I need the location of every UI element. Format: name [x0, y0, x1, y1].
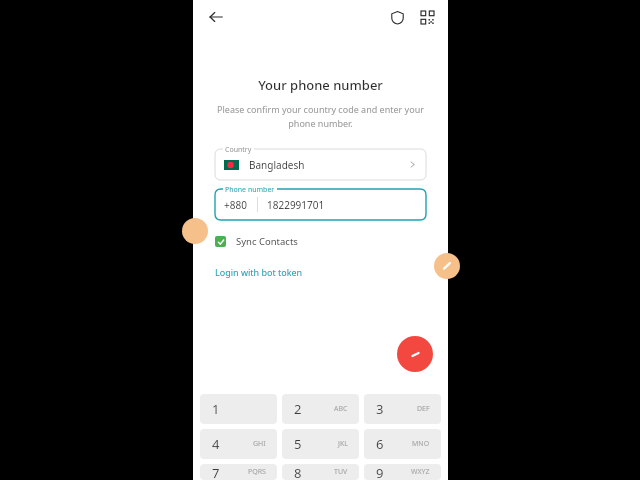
- staticText: Bangladesh: [249, 158, 305, 172]
- button[interactable]: Sync Contacts: [215, 233, 298, 250]
- button[interactable]: Proxy settings: [384, 4, 410, 30]
- staticText: Phone number: [225, 185, 275, 195]
- button[interactable]: 7: [200, 464, 277, 480]
- button[interactable]: Scan QR code: [414, 4, 440, 30]
- button[interactable]: Country: [193, 149, 448, 180]
- staticText: 8: [294, 464, 302, 480]
- button[interactable]: 5: [282, 429, 359, 459]
- staticText: 1822991701: [267, 198, 325, 212]
- button[interactable]: Next: [397, 336, 433, 372]
- staticText: JKL: [338, 439, 348, 449]
- staticText: 2: [294, 400, 302, 418]
- staticText: DEF: [417, 404, 430, 414]
- button[interactable]: 8: [282, 464, 359, 480]
- staticText: 3: [376, 400, 384, 418]
- staticText: Your phone number: [193, 76, 448, 94]
- staticText: 1: [212, 400, 220, 418]
- staticText: GHI: [253, 439, 266, 449]
- staticText: 7: [212, 464, 220, 480]
- staticText: Country: [225, 145, 252, 155]
- staticText: +880: [224, 198, 247, 212]
- staticText: 6: [376, 435, 384, 453]
- button[interactable]: 4: [200, 429, 277, 459]
- staticText: MNO: [412, 439, 430, 449]
- button[interactable]: 2: [282, 394, 359, 424]
- staticText: Login with bot token: [215, 266, 303, 278]
- button[interactable]: 6: [364, 429, 441, 459]
- button[interactable]: Phone number: [193, 189, 448, 220]
- staticText: PQRS: [248, 467, 266, 477]
- staticText: 5: [294, 435, 302, 453]
- staticText: Sync Contacts: [236, 235, 298, 248]
- button[interactable]: Login with bot token: [215, 264, 303, 280]
- staticText: ABC: [334, 404, 348, 414]
- button[interactable]: 3: [364, 394, 441, 424]
- button[interactable]: Back: [203, 4, 229, 30]
- staticText: 4: [212, 435, 220, 453]
- staticText: 9: [376, 464, 384, 480]
- staticText: WXYZ: [411, 467, 430, 477]
- button[interactable]: 1: [200, 394, 277, 424]
- staticText: Please confirm your country code and ent…: [215, 103, 426, 130]
- button[interactable]: 9: [364, 464, 441, 480]
- staticText: TUV: [334, 467, 348, 477]
